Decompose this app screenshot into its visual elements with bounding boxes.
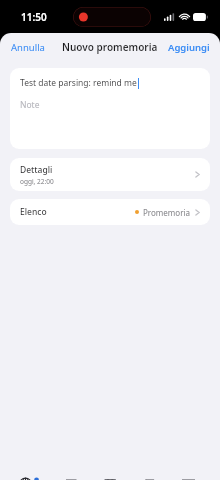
button[interactable]: Dettagli [10,158,210,191]
staticText: oggi, 22:00 [20,177,54,186]
staticText: Aggiungi [168,41,210,54]
staticText: Nuovo promemoria [62,40,158,54]
staticText: Elenco [20,206,47,218]
button[interactable]: Annulla [0,36,56,59]
staticText: Promemoria [143,207,190,218]
staticText: Note [20,99,40,111]
button[interactable]: Test date parsing: remind me [10,68,210,149]
staticText: Annulla [11,41,45,54]
staticText: Dettagli [20,164,53,176]
staticText: Test date parsing: remind me [20,77,137,89]
button[interactable]: Elenco [10,199,210,225]
button[interactable]: Aggiungi [158,36,220,59]
staticText: 11:50 [21,10,47,24]
